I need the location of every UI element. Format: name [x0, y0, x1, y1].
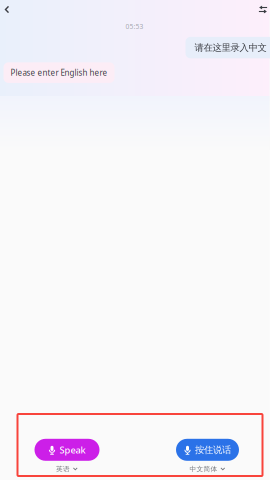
staticText: Please enter English here: [10, 67, 107, 78]
staticText: 英语: [56, 465, 70, 473]
button[interactable]: Back: [0, 0, 18, 18]
staticText: 中文简体: [189, 465, 217, 473]
button[interactable]: Speak: [34, 439, 99, 473]
button[interactable]: Swap languages: [249, 0, 269, 18]
staticText: 按住说话: [195, 444, 231, 456]
button[interactable]: 按住说话: [165, 439, 239, 473]
staticText: Speak: [59, 444, 85, 456]
staticText: 请在这里录入中文: [194, 42, 266, 53]
staticText: 05:53: [125, 22, 143, 31]
